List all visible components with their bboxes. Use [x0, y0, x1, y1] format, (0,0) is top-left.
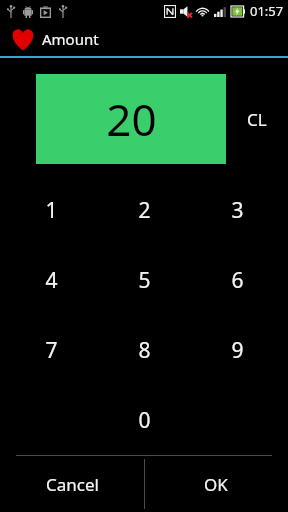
button[interactable]: 8	[102, 315, 186, 385]
button[interactable]: 7	[0, 315, 102, 385]
staticText: 1	[45, 196, 58, 225]
button[interactable]: 9	[186, 315, 288, 385]
staticText: CL	[247, 108, 267, 131]
button[interactable]: Cancel	[0, 456, 144, 512]
staticText: 5	[138, 266, 151, 295]
staticText: 4	[45, 266, 58, 295]
button[interactable]: 2	[102, 175, 186, 245]
staticText: 7	[45, 336, 58, 365]
button[interactable]: 20	[36, 74, 226, 164]
button[interactable]: 5	[102, 245, 186, 315]
staticText: 8	[138, 336, 151, 365]
staticText: OK	[204, 473, 228, 496]
staticText: 20	[106, 89, 157, 149]
button[interactable]: 3	[186, 175, 288, 245]
staticText: 2	[138, 196, 151, 225]
button[interactable]: 4	[0, 245, 102, 315]
staticText: 0	[138, 406, 151, 435]
button[interactable]: 1	[0, 175, 102, 245]
staticText: Cancel	[46, 473, 99, 496]
button[interactable]: Clear	[226, 74, 288, 164]
staticText: 3	[231, 196, 244, 225]
staticText: 6	[231, 266, 244, 295]
button[interactable]: 6	[186, 245, 288, 315]
button[interactable]: OK	[144, 456, 288, 512]
staticText: 01:57	[250, 2, 284, 20]
button[interactable]: 0	[102, 385, 186, 455]
staticText: 9	[231, 336, 244, 365]
staticText: Amount	[42, 29, 99, 49]
